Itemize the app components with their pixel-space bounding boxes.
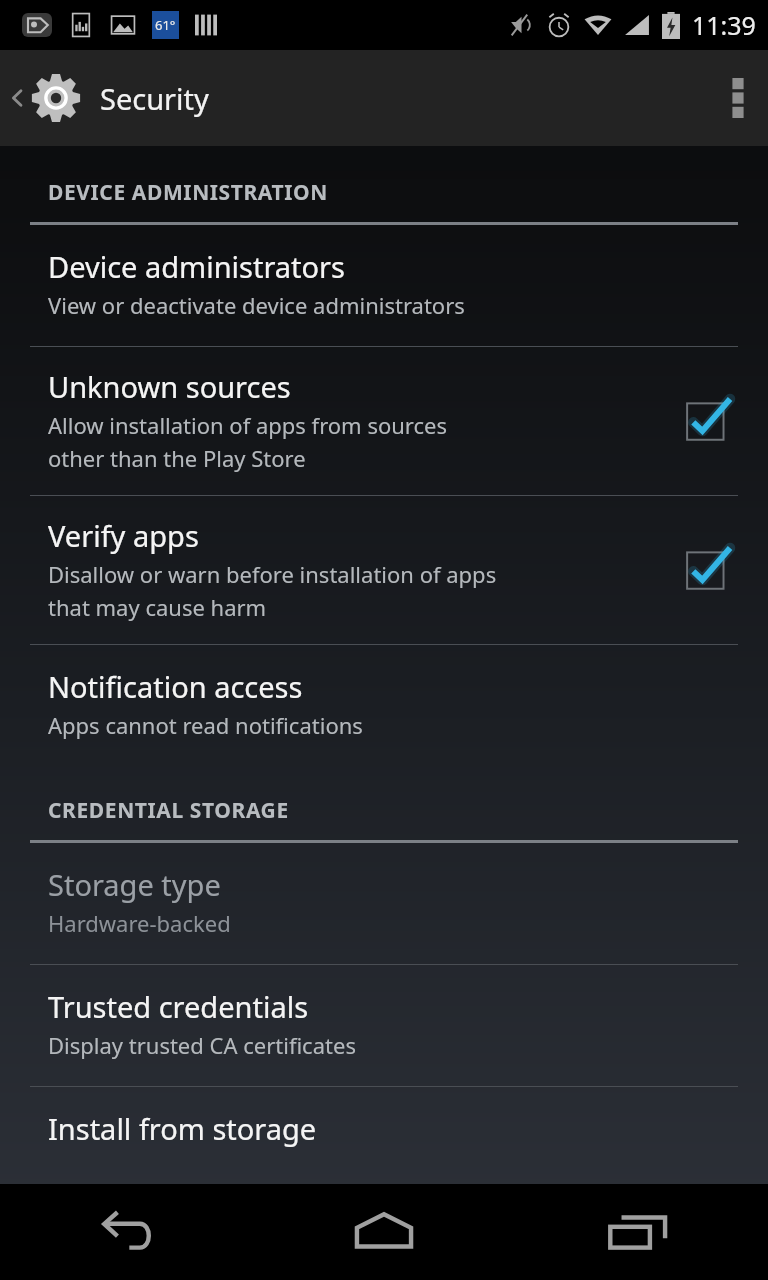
staticText: Hardware-backed [48, 908, 231, 938]
staticText: Security [100, 79, 209, 118]
staticText: Device administrators [48, 247, 345, 286]
button[interactable]: Home [256, 1184, 512, 1280]
staticText: 11:39 [692, 8, 756, 42]
button[interactable]: Unknown sources [0, 347, 768, 495]
staticText: Disallow or warn before installation of … [48, 559, 497, 622]
staticText: Display trusted CA certificates [48, 1030, 356, 1060]
button[interactable]: Trusted credentials [0, 965, 768, 1086]
button[interactable]: Storage type [0, 843, 768, 964]
button[interactable]: More options [708, 50, 768, 146]
staticText: Storage type [48, 865, 221, 904]
staticText: Allow installation of apps from sources … [48, 410, 447, 473]
other: Verify apps checkbox [682, 541, 738, 597]
button[interactable]: Device administrators [0, 225, 768, 346]
staticText: Apps cannot read notifications [48, 710, 363, 740]
button[interactable]: Recent apps [512, 1184, 768, 1280]
button[interactable]: Security [0, 50, 225, 146]
staticText: Unknown sources [48, 367, 291, 406]
other: Unknown sources checkbox [682, 392, 738, 448]
button[interactable]: Notification access [0, 645, 768, 764]
button[interactable]: Install from storage [0, 1087, 768, 1174]
staticText: Install from storage [48, 1109, 317, 1148]
staticText: 61° [155, 16, 176, 34]
button[interactable]: Verify apps [0, 496, 768, 644]
staticText: View or deactivate device administrators [48, 290, 465, 320]
button[interactable]: Back [0, 1184, 256, 1280]
staticText: Trusted credentials [48, 987, 309, 1026]
staticText: Notification access [48, 667, 303, 706]
staticText: CREDENTIAL STORAGE [48, 796, 289, 825]
staticText: DEVICE ADMINISTRATION [48, 178, 328, 207]
staticText: Verify apps [48, 516, 199, 555]
